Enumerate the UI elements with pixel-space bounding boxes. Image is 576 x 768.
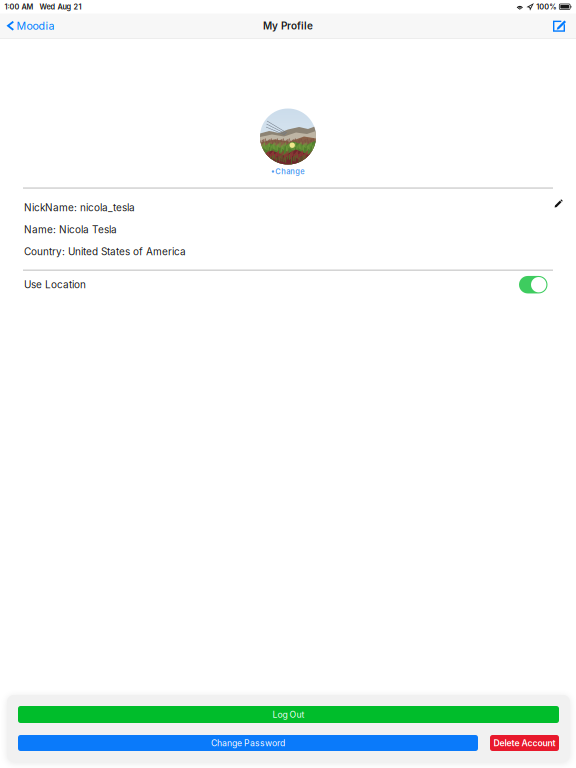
button[interactable]: Profile photo	[260, 108, 316, 164]
staticText: Log Out	[272, 709, 304, 720]
staticText: Name: Nicola Tesla	[24, 224, 117, 236]
button[interactable]: Delete Account	[490, 735, 559, 751]
button[interactable]: Edit profile	[555, 189, 576, 208]
button[interactable]: Change	[272, 164, 304, 174]
staticText: Moodia	[16, 19, 54, 32]
staticText: Change	[275, 167, 304, 176]
button[interactable]: Log Out	[18, 706, 559, 723]
staticText: Change Password	[211, 738, 285, 748]
button[interactable]: Compose	[553, 13, 576, 38]
button[interactable]: Change Password	[18, 735, 478, 751]
staticText: Delete Account	[493, 738, 555, 748]
button[interactable]: Moodia	[0, 13, 60, 38]
staticText: Country: United States of America	[24, 246, 186, 258]
staticText: 1:00 AM	[4, 2, 33, 11]
staticText: 100%	[536, 2, 556, 11]
staticText: Use Location	[24, 279, 86, 291]
staticText: Wed Aug 21	[39, 2, 81, 11]
staticText: My Profile	[263, 20, 313, 32]
staticText: NickName: nicola_tesla	[24, 202, 135, 214]
button[interactable]: Use Location	[519, 276, 547, 293]
